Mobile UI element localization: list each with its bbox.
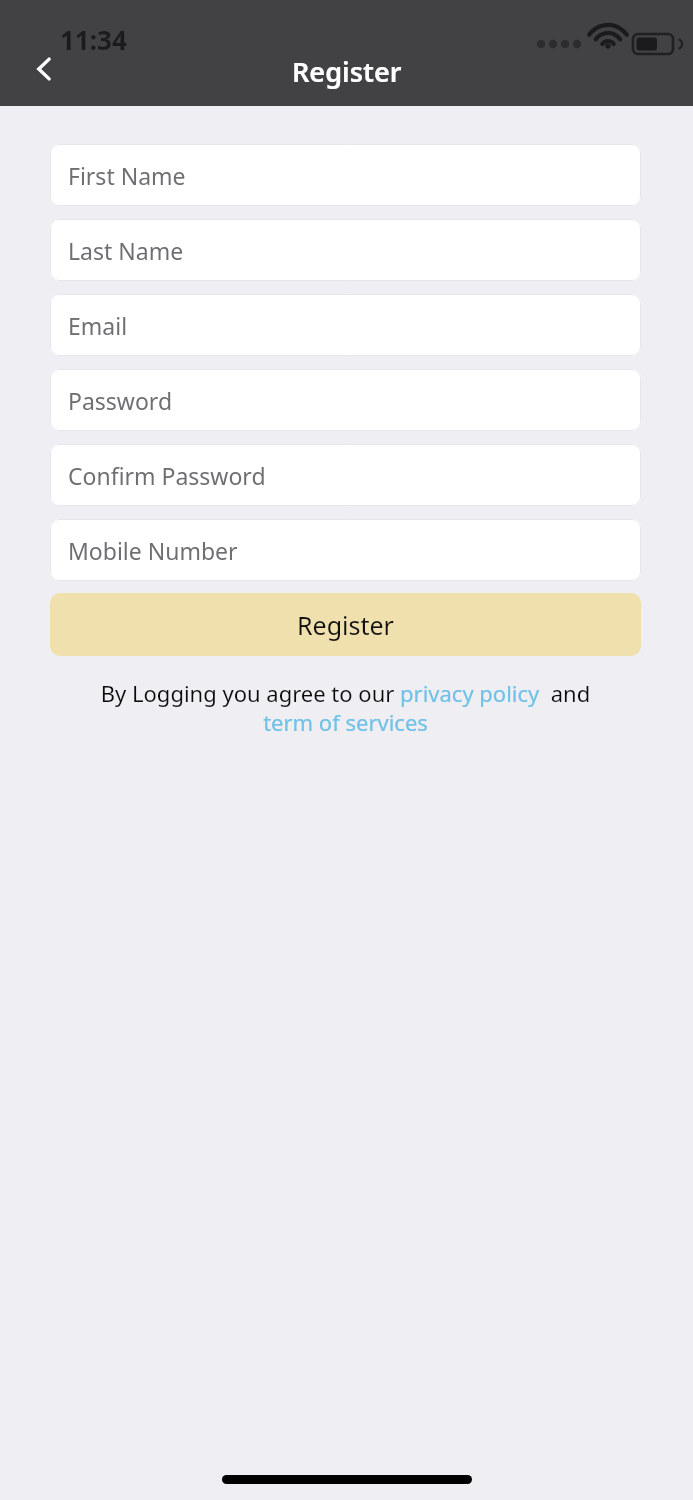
staticText: First Name [68, 160, 186, 191]
staticText: By Logging you agree to our privacy poli… [88, 678, 603, 737]
staticText: Mobile Number [68, 535, 238, 566]
button[interactable]: Mobile Number [50, 519, 641, 581]
button[interactable]: By Logging you agree to our privacy poli… [50, 678, 641, 737]
staticText: Confirm Password [68, 460, 266, 491]
staticText: Email [68, 310, 128, 341]
button[interactable]: Back [22, 46, 68, 92]
staticText: Register [297, 608, 394, 642]
button[interactable]: First Name [50, 144, 641, 206]
button[interactable]: Password [50, 369, 641, 431]
staticText: Password [68, 385, 173, 416]
button[interactable]: Register [50, 593, 641, 656]
button[interactable]: Last Name [50, 219, 641, 281]
staticText: 11:34 [60, 22, 127, 57]
staticText: Register [292, 53, 402, 90]
staticText: Last Name [68, 235, 184, 266]
button[interactable]: Confirm Password [50, 444, 641, 506]
button[interactable]: Email [50, 294, 641, 356]
